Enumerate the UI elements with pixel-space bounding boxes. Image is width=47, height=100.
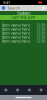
staticText: Item name here: [2, 38, 30, 44]
staticText: 12:30: [36, 30, 45, 36]
staticText: Item name here: [2, 34, 30, 40]
staticText: 12:30: [36, 38, 45, 44]
staticText: Item name here: [2, 30, 30, 36]
staticText: GET THE APP: [12, 15, 35, 20]
staticText: 12:30: [36, 22, 45, 28]
button[interactable]: [0, 88, 12, 91]
staticText: Item name here: [2, 22, 30, 28]
button[interactable]: [23, 88, 35, 91]
button[interactable]: [12, 88, 24, 91]
staticText: Updates: [16, 10, 30, 16]
staticText: 12:30: [36, 26, 45, 32]
staticText: 9:41: [3, 0, 10, 5]
staticText: 12:30: [36, 34, 45, 40]
staticText: Item name here: [2, 26, 30, 32]
button[interactable]: [35, 88, 47, 91]
staticText: Search: [7, 5, 19, 11]
